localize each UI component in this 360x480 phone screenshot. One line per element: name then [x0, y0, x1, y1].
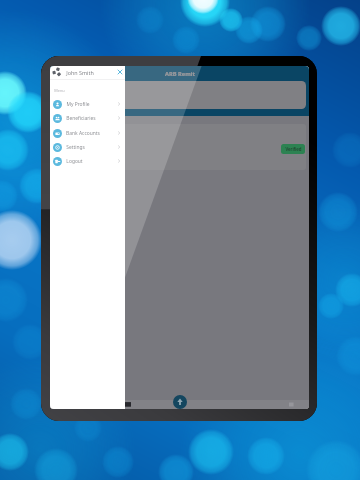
staticText: Menu: [54, 88, 65, 93]
staticText: John Smith: [66, 69, 94, 76]
button[interactable]: My Profile: [50, 97, 125, 111]
staticText: ARB Remit: [165, 70, 195, 78]
staticText: Settings: [66, 144, 85, 151]
staticText: Logout: [66, 158, 83, 165]
button[interactable]: John Smith: [50, 66, 125, 78]
staticText: Bank Accounts: [66, 130, 100, 137]
button[interactable]: Home: [173, 395, 187, 409]
button[interactable]: Settings: [50, 140, 125, 154]
staticText: My Profile: [66, 101, 90, 108]
staticText: Beneficiaries: [66, 115, 96, 122]
button[interactable]: Bank Accounts: [50, 126, 125, 140]
button[interactable]: Beneficiaries: [50, 111, 125, 125]
button[interactable]: Logout: [50, 154, 125, 168]
staticText: Verified: [285, 146, 302, 152]
button[interactable]: Verified: [281, 144, 305, 154]
button[interactable]: Close menu: [116, 68, 123, 75]
